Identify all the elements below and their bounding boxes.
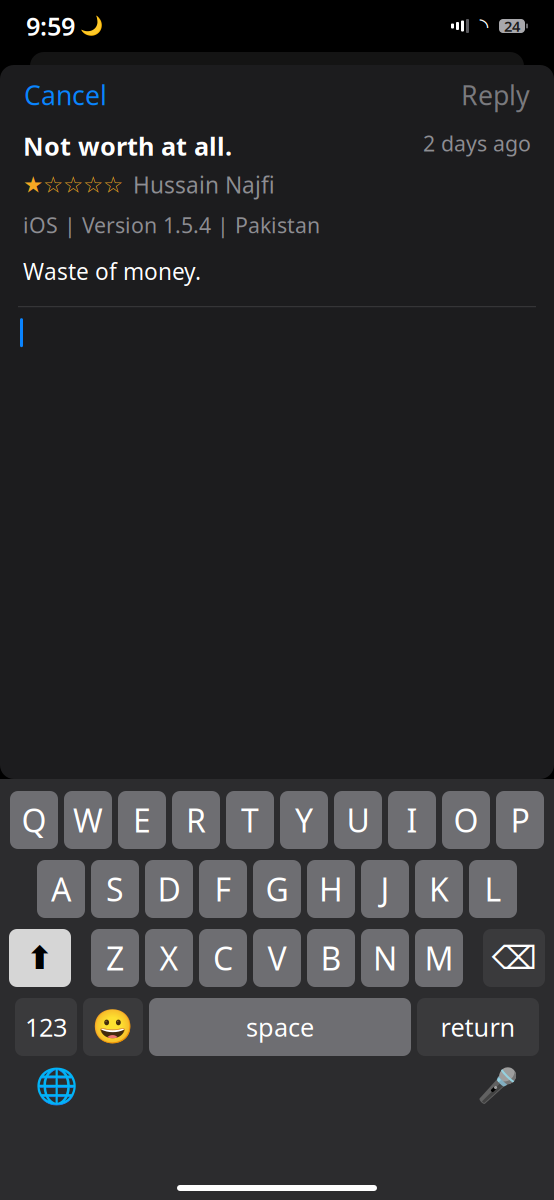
- button[interactable]: H: [307, 860, 355, 918]
- staticText: E: [133, 799, 151, 841]
- staticText: ★: [23, 172, 43, 197]
- staticText: V: [267, 937, 286, 979]
- staticText: F: [214, 868, 231, 910]
- button[interactable]: O: [442, 791, 490, 849]
- button[interactable]: N: [361, 929, 409, 987]
- staticText: I: [406, 799, 417, 841]
- staticText: C: [213, 937, 233, 979]
- button[interactable]: L: [469, 860, 517, 918]
- staticText: Q: [21, 799, 46, 841]
- staticText: M: [424, 937, 453, 979]
- button[interactable]: W: [64, 791, 112, 849]
- button[interactable]: Z: [91, 929, 139, 987]
- staticText: Reply: [461, 77, 530, 113]
- button[interactable]: R: [172, 791, 220, 849]
- staticText: W: [73, 799, 103, 841]
- staticText: Waste of money.: [23, 256, 201, 286]
- staticText: 😀: [92, 1008, 134, 1046]
- button[interactable]: return: [417, 998, 539, 1056]
- button[interactable]: J: [361, 860, 409, 918]
- staticText: B: [320, 937, 341, 979]
- staticText: ◝: [479, 13, 488, 39]
- staticText: 24: [504, 16, 520, 36]
- staticText: 9:59: [26, 9, 75, 43]
- staticText: Not worth at all.: [23, 129, 232, 163]
- staticText: J: [380, 868, 389, 910]
- button[interactable]: K: [415, 860, 463, 918]
- button[interactable]: F: [199, 860, 247, 918]
- button[interactable]: Next keyboard: [34, 1064, 78, 1108]
- button[interactable]: S: [91, 860, 139, 918]
- button[interactable]: Reply: [461, 77, 530, 113]
- staticText: return: [440, 1010, 515, 1044]
- staticText: U: [346, 799, 369, 841]
- staticText: ⬆: [26, 940, 53, 976]
- staticText: O: [453, 799, 478, 841]
- staticText: 🌙: [80, 15, 103, 37]
- button[interactable]: G: [253, 860, 301, 918]
- button[interactable]: X: [145, 929, 193, 987]
- button[interactable]: C: [199, 929, 247, 987]
- staticText: A: [51, 868, 71, 910]
- staticText: space: [246, 1010, 314, 1044]
- button[interactable]: P: [496, 791, 544, 849]
- button[interactable]: E: [118, 791, 166, 849]
- button[interactable]: Shift: [9, 929, 71, 987]
- staticText: Y: [295, 799, 313, 841]
- staticText: X: [159, 937, 178, 979]
- staticText: 123: [25, 1010, 67, 1044]
- button[interactable]: I: [388, 791, 436, 849]
- button[interactable]: D: [145, 860, 193, 918]
- staticText: 🎤: [477, 1067, 519, 1105]
- button[interactable]: U: [334, 791, 382, 849]
- button[interactable]: V: [253, 929, 301, 987]
- button[interactable]: T: [226, 791, 274, 849]
- button[interactable]: Y: [280, 791, 328, 849]
- button[interactable]: Cancel: [24, 77, 107, 113]
- staticText: N: [373, 937, 397, 979]
- staticText: P: [510, 799, 529, 841]
- button[interactable]: A: [37, 860, 85, 918]
- button[interactable]: space: [149, 998, 411, 1056]
- button[interactable]: B: [307, 929, 355, 987]
- staticText: G: [265, 868, 288, 910]
- button[interactable]: 123: [15, 998, 77, 1056]
- staticText: ☆: [43, 172, 63, 197]
- staticText: iOS | Version 1.5.4 | Pakistan: [23, 211, 320, 239]
- button[interactable]: Dictate: [476, 1064, 520, 1108]
- staticText: 2 days ago: [423, 129, 531, 157]
- staticText: ☆: [63, 172, 83, 197]
- button[interactable]: Q: [10, 791, 58, 849]
- staticText: S: [106, 868, 124, 910]
- staticText: Hussain Najfi: [133, 170, 275, 200]
- button[interactable]: M: [415, 929, 463, 987]
- staticText: ⌫: [491, 940, 536, 976]
- button[interactable]: Emoji: [83, 998, 143, 1056]
- staticText: T: [241, 799, 259, 841]
- staticText: L: [484, 868, 501, 910]
- staticText: Cancel: [24, 77, 107, 113]
- button[interactable]: Delete: [483, 929, 545, 987]
- staticText: K: [429, 868, 449, 910]
- staticText: ☆: [83, 172, 103, 197]
- staticText: D: [157, 868, 180, 910]
- staticText: ☆: [103, 172, 123, 197]
- staticText: Z: [106, 937, 124, 979]
- staticText: 🌐: [34, 1066, 77, 1106]
- staticText: R: [186, 799, 206, 841]
- staticText: H: [319, 868, 343, 910]
